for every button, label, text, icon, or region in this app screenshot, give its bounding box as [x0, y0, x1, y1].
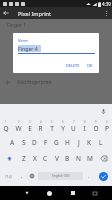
staticText: ?1☺: [5, 174, 13, 179]
staticText: Name: [18, 38, 29, 43]
button[interactable]: 3: [24, 118, 35, 134]
staticText: P: [105, 124, 109, 133]
staticText: 0: [106, 120, 108, 124]
button[interactable]: Voice input: [99, 107, 108, 116]
button[interactable]: 6: [57, 118, 68, 134]
staticText: B: [65, 154, 70, 163]
button[interactable]: 5: [46, 118, 57, 134]
button[interactable]: ,: [17, 166, 27, 186]
button[interactable]: D: [29, 134, 40, 150]
button[interactable]: Back: [0, 7, 12, 19]
button[interactable]: More options: [100, 7, 112, 19]
staticText: C: [43, 154, 48, 163]
staticText: 5: [51, 120, 53, 124]
staticText: U: [71, 124, 76, 133]
button[interactable]: Home: [38, 186, 61, 200]
button[interactable]: Enter: [99, 172, 108, 181]
staticText: N: [76, 154, 81, 163]
staticText: 6: [62, 120, 64, 124]
staticText: R: [38, 124, 43, 133]
button[interactable]: Recent apps: [61, 186, 84, 200]
button[interactable]: Finger 1: [7, 19, 112, 31]
staticText: Pixel Imprint: [18, 10, 51, 17]
staticText: D: [32, 138, 37, 147]
button[interactable]: Change language: [27, 166, 37, 186]
button[interactable]: English (US): [38, 172, 83, 180]
button[interactable]: 4: [35, 118, 46, 134]
button[interactable]: 9: [90, 118, 101, 134]
button[interactable]: 2: [12, 118, 24, 134]
staticText: 2: [18, 120, 20, 124]
button[interactable]: L: [95, 134, 106, 150]
staticText: Finger 4: [18, 45, 38, 52]
button[interactable]: F: [40, 134, 51, 150]
button[interactable]: A: [7, 134, 18, 150]
staticText: 7: [73, 120, 75, 124]
button[interactable]: N: [73, 150, 84, 166]
staticText: A: [10, 138, 15, 147]
staticText: G: [54, 138, 59, 147]
button[interactable]: Add fingerprint: [0, 76, 112, 88]
button[interactable]: C: [40, 150, 51, 166]
button[interactable]: K: [84, 134, 95, 150]
button[interactable]: X: [29, 150, 40, 166]
staticText: 9: [95, 120, 97, 124]
button[interactable]: 8: [79, 118, 90, 134]
button[interactable]: Hide keyboard: [84, 186, 105, 200]
staticText: J: [78, 138, 80, 147]
staticText: L: [99, 138, 103, 147]
button[interactable]: Back: [15, 186, 38, 200]
staticText: OK: [87, 63, 93, 68]
staticText: H: [65, 138, 70, 147]
staticText: I: [83, 124, 86, 133]
button[interactable]: .: [84, 166, 94, 186]
staticText: Z: [22, 154, 26, 163]
button[interactable]: DELETE: [64, 61, 82, 70]
button[interactable]: S: [18, 134, 29, 150]
staticText: E: [28, 124, 32, 133]
staticText: DELETE: [66, 63, 80, 68]
staticText: Q: [3, 124, 9, 133]
staticText: S: [22, 138, 26, 147]
staticText: W: [15, 124, 22, 133]
staticText: ,: [21, 173, 23, 180]
staticText: Y: [61, 124, 65, 133]
staticText: F: [44, 138, 48, 147]
button[interactable]: J: [73, 134, 84, 150]
button[interactable]: Backspace: [95, 150, 112, 166]
staticText: M: [87, 154, 93, 163]
button[interactable]: H: [62, 134, 73, 150]
button[interactable]: 1: [0, 118, 12, 134]
staticText: Finger 1: [7, 22, 27, 29]
button[interactable]: V: [51, 150, 62, 166]
staticText: 4:39: [102, 1, 111, 7]
button[interactable]: Z: [18, 150, 29, 166]
button[interactable]: G: [51, 134, 62, 150]
button[interactable]: Shift: [0, 150, 18, 166]
staticText: 8: [84, 120, 86, 124]
button[interactable]: M: [84, 150, 95, 166]
button[interactable]: B: [62, 150, 73, 166]
button[interactable]: OK: [85, 61, 95, 70]
staticText: T: [50, 124, 54, 133]
button[interactable]: 0: [101, 118, 112, 134]
staticText: 4: [40, 120, 42, 124]
button[interactable]: ?1☺: [0, 166, 17, 186]
staticText: 3: [29, 120, 31, 124]
staticText: .: [88, 173, 90, 180]
staticText: English (US): [52, 174, 70, 178]
staticText: V: [55, 154, 59, 163]
staticText: Add fingerprint: [17, 79, 52, 86]
staticText: O: [93, 124, 99, 133]
staticText: K: [87, 138, 92, 147]
button[interactable]: 7: [68, 118, 79, 134]
staticText: 1: [5, 120, 7, 124]
staticText: X: [33, 154, 37, 163]
